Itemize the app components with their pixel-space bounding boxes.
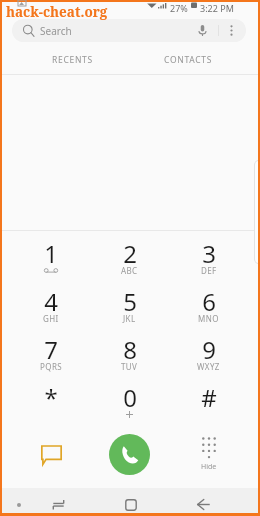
staticText: 4 [44, 285, 58, 318]
button[interactable]: Back [183, 492, 223, 516]
button[interactable]: Recents [38, 492, 78, 516]
staticText: 7 [44, 333, 58, 366]
button[interactable]: 7 [12, 325, 90, 373]
button[interactable]: Home [111, 492, 151, 516]
button[interactable]: 5 [90, 277, 169, 325]
staticText: 6 [202, 285, 216, 318]
button[interactable]: Voice search [192, 19, 212, 42]
button[interactable]: RECENTS [14, 46, 130, 74]
staticText: TUV [121, 361, 138, 372]
staticText: JKL [123, 313, 136, 324]
staticText: DEF [201, 265, 217, 276]
staticText: 3:22 PM [200, 2, 234, 14]
staticText: 3 [202, 237, 216, 270]
staticText: hack-cheat.org [6, 3, 108, 21]
button[interactable]: 3 [169, 229, 248, 277]
staticText: PQRS [40, 361, 63, 372]
staticText: 9 [202, 333, 216, 366]
staticText: WXYZ [197, 361, 220, 372]
button[interactable]: Send message [12, 421, 90, 488]
staticText: 0 [123, 381, 137, 414]
staticText: 1 [44, 237, 58, 270]
staticText: GHI [43, 313, 59, 324]
button[interactable]: 6 [169, 277, 248, 325]
button[interactable]: 2 [90, 229, 169, 277]
staticText: 5 [123, 285, 137, 318]
staticText: ABC [121, 265, 138, 276]
button[interactable]: More options [219, 19, 243, 42]
button[interactable]: 0 [90, 373, 169, 421]
staticText: * [44, 381, 58, 414]
staticText: RECENTS [52, 54, 93, 66]
button[interactable]: * [12, 373, 90, 421]
staticText: CONTACTS [164, 54, 213, 66]
staticText: 8 [123, 333, 137, 366]
button[interactable]: 8 [90, 325, 169, 373]
button[interactable]: 9 [169, 325, 248, 373]
button[interactable]: Hide keypad [169, 421, 248, 488]
button[interactable]: 4 [12, 277, 90, 325]
button[interactable]: # [169, 373, 248, 421]
staticText: Hide [201, 462, 217, 472]
button[interactable]: Search [12, 19, 246, 42]
staticText: 2 [123, 237, 137, 270]
button[interactable]: CONTACTS [130, 46, 246, 74]
button[interactable]: 1 [12, 229, 90, 277]
staticText: 27% [170, 2, 188, 14]
staticText: # [201, 381, 217, 414]
staticText: Search [40, 24, 72, 38]
button[interactable]: Call [90, 421, 169, 488]
staticText: MNO [198, 313, 219, 324]
